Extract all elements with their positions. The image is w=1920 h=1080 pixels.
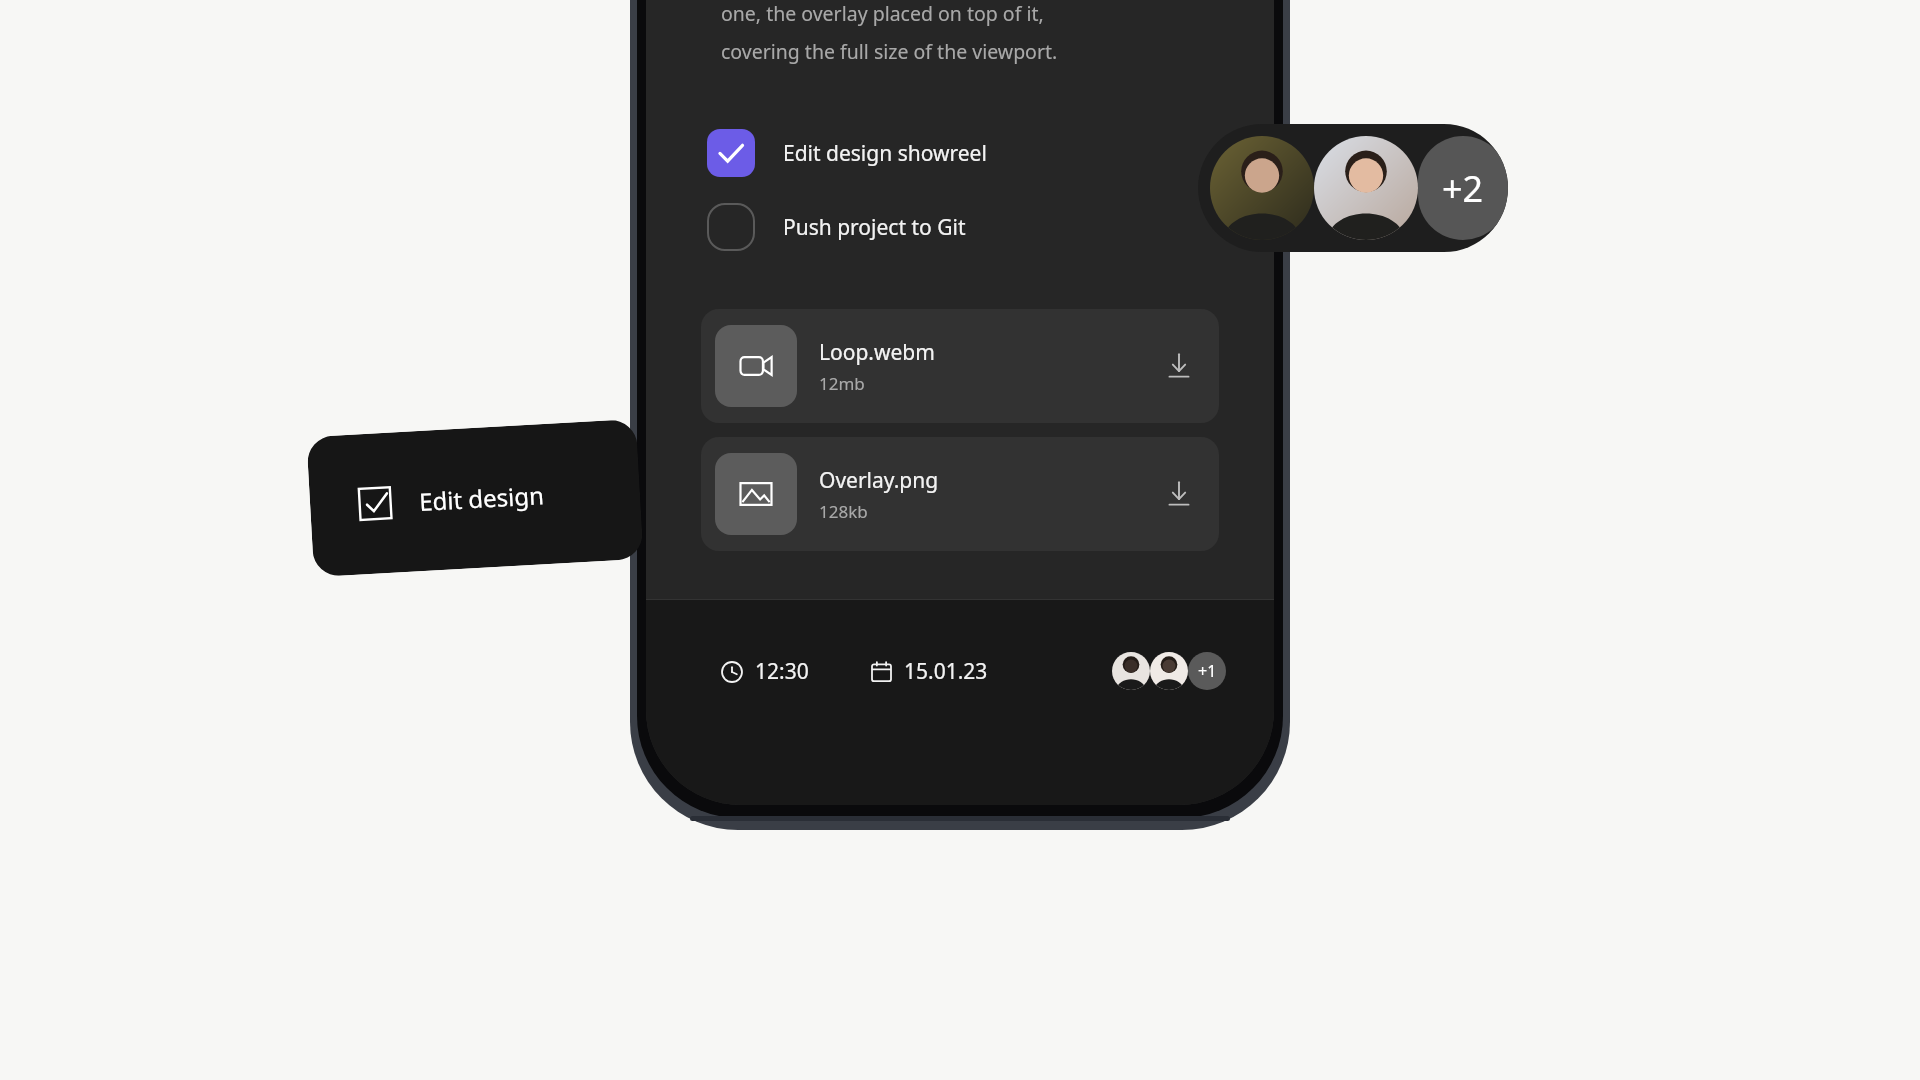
button[interactable]: Edit design showreel xyxy=(646,123,1274,183)
button[interactable]: Collaborators xyxy=(1198,124,1508,252)
button[interactable]: 12:30 xyxy=(721,657,809,686)
staticText: 12:30 xyxy=(755,657,809,686)
staticText: +2 xyxy=(1442,164,1484,213)
staticText: 15.01.23 xyxy=(904,657,988,686)
staticText: Loop.webm xyxy=(819,338,935,367)
staticText: Edit design showreel xyxy=(783,139,987,168)
button[interactable]: Push project to Git xyxy=(646,197,1274,257)
button[interactable]: 15.01.23 xyxy=(871,657,988,686)
button[interactable]: Download xyxy=(1153,468,1205,520)
button[interactable]: Download xyxy=(1153,340,1205,392)
staticText: Overlay.png xyxy=(819,466,939,495)
staticText: one, the overlay placed on top of it, xyxy=(721,0,1044,27)
staticText: +1 xyxy=(1198,660,1217,682)
staticText: Push project to Git xyxy=(783,213,966,242)
button[interactable]: Overlay.png xyxy=(701,437,1219,551)
staticText: Edit design showreel xyxy=(418,473,641,518)
button[interactable]: Loop.webm xyxy=(701,309,1219,423)
staticText: covering the full size of the viewport. xyxy=(721,38,1058,65)
button[interactable]: Members xyxy=(1112,652,1226,690)
button[interactable]: Edit design showreel xyxy=(306,419,644,577)
staticText: 12mb xyxy=(819,372,865,395)
staticText: 128kb xyxy=(819,500,868,523)
